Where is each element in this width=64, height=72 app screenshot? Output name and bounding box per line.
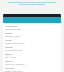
button[interactable]: Notifications: [3, 25, 61, 32]
button[interactable]: Security: [3, 60, 61, 67]
staticText: Sound: [5, 39, 12, 42]
staticText: Brightness, theme: [5, 35, 21, 37]
staticText: Notifications: [5, 25, 18, 28]
button[interactable]: Sound: [3, 39, 61, 46]
staticText: Display: [5, 32, 13, 35]
staticText: Security: [5, 60, 13, 63]
button[interactable]: Display: [3, 32, 61, 39]
button[interactable]: Battery: [3, 53, 61, 60]
staticText: 78% - 6 h left: [5, 56, 16, 58]
staticText: Ringtone, vibration: [5, 28, 22, 30]
button[interactable]: Accounts: [3, 67, 61, 72]
staticText: Battery: [5, 53, 13, 56]
staticText: Lorem ipsum dolor sit amet consectetur a…: [8, 1, 56, 6]
staticText: Google, work profile: [5, 70, 23, 72]
button[interactable]: Storage: [3, 46, 61, 53]
staticText: 28 GB used of 64 GB: [5, 49, 23, 51]
staticText: Accounts: [5, 67, 14, 70]
staticText: Screen lock, fingerprint: [5, 63, 25, 65]
staticText: Volume, do not disturb: [5, 42, 25, 44]
staticText: Storage: [5, 46, 13, 49]
